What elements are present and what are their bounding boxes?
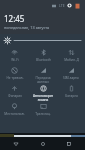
button[interactable]: Мобил. Д (57, 47, 85, 65)
button[interactable]: Трансляц. (29, 101, 57, 119)
button[interactable]: Батарея (57, 83, 85, 101)
button[interactable]: Home (33, 138, 53, 150)
button[interactable]: Передача данных (29, 65, 57, 83)
staticText: Местополож. (4, 112, 25, 116)
button[interactable]: Bluetooth (29, 47, 57, 65)
staticText: Фонарик (8, 94, 22, 98)
staticText: Мобил. Д (64, 58, 79, 62)
button[interactable]: Не тревож. (0, 65, 29, 83)
staticText: Автоповорот экрана (33, 94, 53, 101)
staticText: понедельник, 13 августа (4, 25, 50, 30)
button[interactable]: Back (6, 138, 26, 150)
button[interactable]: Местополож. (0, 101, 29, 119)
staticText: Wi-Fi (11, 58, 19, 62)
staticText: LTE (59, 3, 65, 8)
staticText: SIM-карты (63, 76, 79, 80)
staticText: Не тревож. (6, 76, 24, 80)
staticText: Bluetooth (36, 58, 51, 62)
staticText: Батарея (65, 94, 78, 98)
staticText: Трансляц. (35, 112, 51, 116)
button[interactable]: Wi-Fi (0, 47, 29, 65)
button[interactable]: SIM-карты (57, 65, 85, 83)
button[interactable]: Brightness (0, 34, 85, 47)
button[interactable]: Recents (59, 138, 79, 150)
staticText: 12:45 (4, 13, 25, 24)
button[interactable]: Автоповорот экрана (29, 83, 57, 101)
staticText: Передача данных (35, 76, 51, 83)
button[interactable]: Фонарик (0, 83, 29, 101)
